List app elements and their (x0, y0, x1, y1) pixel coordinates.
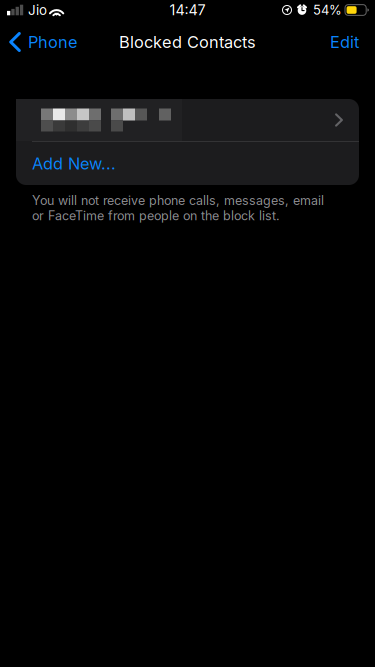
button[interactable]: Edit (320, 20, 375, 64)
button[interactable] (16, 99, 359, 141)
staticText: Blocked Contacts (119, 32, 256, 52)
button[interactable]: Add New... (16, 142, 359, 185)
staticText: Jio (28, 2, 47, 18)
staticText: Phone (28, 32, 78, 52)
staticText: Edit (330, 32, 359, 52)
staticText: You will not receive phone calls, messag… (32, 193, 324, 223)
staticText: 14:47 (169, 1, 205, 19)
staticText: Add New... (32, 154, 116, 173)
staticText: 54% (313, 2, 342, 18)
button[interactable]: Phone (0, 20, 86, 64)
